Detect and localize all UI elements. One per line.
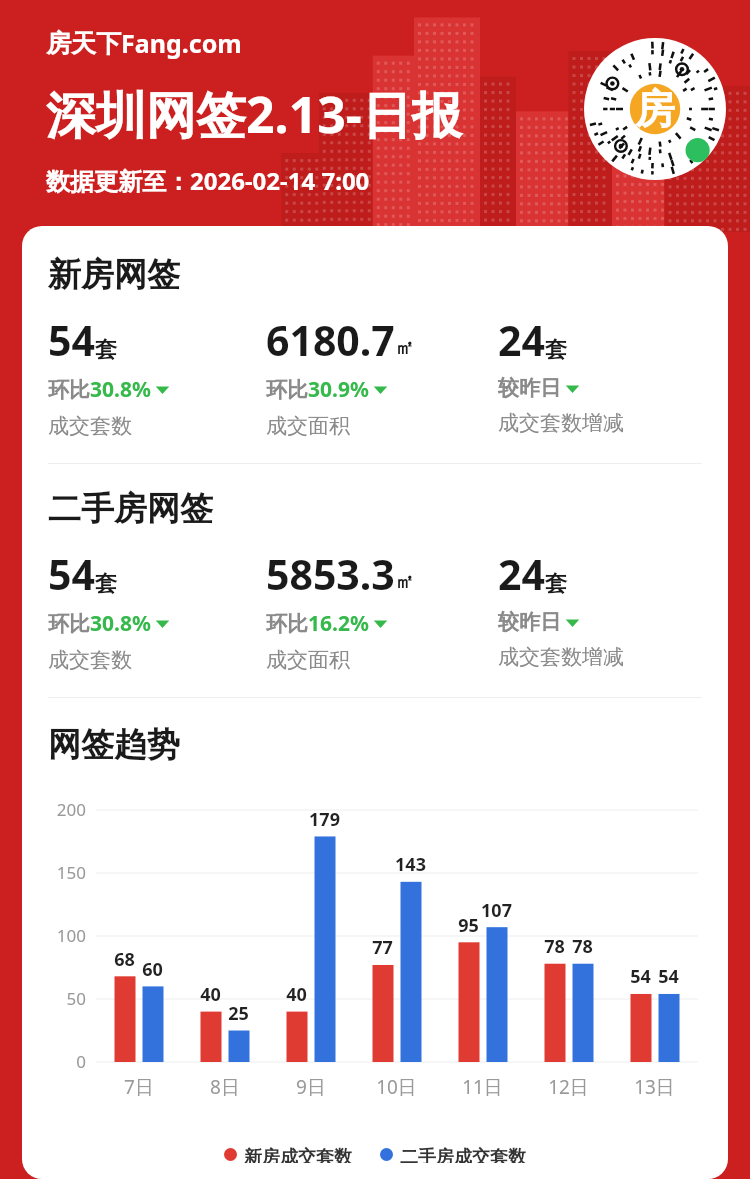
- staticText: 68: [114, 947, 135, 972]
- staticText: 成交面积: [266, 413, 350, 439]
- staticText: 13日: [634, 1074, 675, 1100]
- button[interactable]: 新房成交套数: [224, 1146, 352, 1163]
- staticText: 40: [200, 982, 221, 1007]
- button[interactable]: 54: [48, 546, 170, 673]
- staticText: 环比: [266, 611, 308, 637]
- staticText: 网签趋势: [48, 724, 180, 766]
- staticText: 50: [66, 987, 86, 1010]
- staticText: 54: [658, 964, 679, 989]
- staticText: 200: [56, 798, 86, 821]
- staticText: 179: [309, 807, 340, 832]
- staticText: 成交套数: [48, 413, 132, 439]
- staticText: 新房成交套数: [244, 1146, 352, 1163]
- staticText: 77: [372, 935, 393, 960]
- staticText: 数据更新至：2026-02-14 7:00: [46, 164, 370, 197]
- staticText: 7日: [124, 1074, 154, 1100]
- staticText: 30.9%: [308, 375, 369, 404]
- staticText: 环比: [48, 611, 90, 637]
- staticText: 30.8%: [90, 609, 151, 638]
- staticText: 10日: [376, 1074, 417, 1100]
- staticText: 新房网签: [48, 254, 180, 296]
- staticText: 25: [228, 1001, 249, 1026]
- staticText: 较昨日: [498, 609, 561, 635]
- staticText: 6180.7: [266, 312, 395, 368]
- button[interactable]: 6180.7: [266, 312, 414, 439]
- staticText: 套: [545, 336, 567, 364]
- staticText: 成交套数增减: [498, 644, 624, 670]
- staticText: 套: [545, 570, 567, 598]
- staticText: 房天下: [46, 28, 121, 59]
- staticText: 套: [95, 570, 117, 598]
- staticText: 78: [544, 934, 565, 959]
- staticText: 套: [95, 336, 117, 364]
- button[interactable]: 24: [498, 546, 624, 670]
- staticText: 8日: [210, 1074, 240, 1100]
- staticText: 房: [635, 84, 675, 134]
- staticText: 0: [76, 1050, 86, 1073]
- button[interactable]: 二手房成交套数: [380, 1146, 526, 1163]
- staticText: 二手房网签: [48, 488, 213, 530]
- button[interactable]: 5853.3: [266, 546, 414, 673]
- staticText: 二手房成交套数: [400, 1146, 526, 1163]
- staticText: 较昨日: [498, 375, 561, 401]
- staticText: 11日: [462, 1074, 503, 1100]
- staticText: 95: [458, 913, 479, 938]
- staticText: 60: [142, 957, 163, 982]
- staticText: 150: [56, 861, 86, 884]
- staticText: 9日: [296, 1074, 326, 1100]
- staticText: 54: [48, 312, 95, 368]
- button[interactable]: 房天下: [46, 26, 242, 60]
- staticText: 12日: [548, 1074, 589, 1100]
- staticText: ㎡: [395, 570, 414, 594]
- button[interactable]: 24: [498, 312, 624, 436]
- staticText: 16.2%: [308, 609, 369, 638]
- staticText: 24: [498, 546, 545, 602]
- button[interactable]: 54: [48, 312, 170, 439]
- staticText: 143: [395, 852, 426, 877]
- staticText: 40: [286, 982, 307, 1007]
- staticText: 成交套数增减: [498, 410, 624, 436]
- staticText: 107: [481, 898, 512, 923]
- staticText: 54: [48, 546, 95, 602]
- staticText: Fang.com: [121, 26, 242, 60]
- staticText: 78: [572, 934, 593, 959]
- button[interactable]: 小程序二维码: [584, 38, 726, 180]
- staticText: 环比: [48, 377, 90, 403]
- staticText: 24: [498, 312, 545, 368]
- staticText: ㎡: [395, 336, 414, 360]
- staticText: 100: [56, 924, 86, 947]
- staticText: 54: [630, 964, 651, 989]
- staticText: 成交面积: [266, 647, 350, 673]
- staticText: 5853.3: [266, 546, 395, 602]
- staticText: 成交套数: [48, 647, 132, 673]
- staticText: 深圳网签2.13-日报: [46, 80, 462, 148]
- staticText: 环比: [266, 377, 308, 403]
- staticText: 30.8%: [90, 375, 151, 404]
